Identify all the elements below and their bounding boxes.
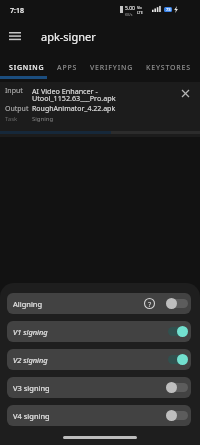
button[interactable]: APPS <box>51 52 84 80</box>
staticText: Signing <box>32 115 54 123</box>
button[interactable]: V2 signing <box>7 349 191 370</box>
staticText: 7:18 <box>10 6 24 16</box>
staticText: Task <box>5 115 18 123</box>
staticText: Utool_1152.63___Pro.apk <box>32 93 116 103</box>
staticText: AI Video Enhancer - <box>32 86 98 96</box>
button[interactable]: VERIFYING <box>84 52 140 80</box>
button[interactable]: Cancel task <box>176 84 194 102</box>
staticText: KB/s <box>125 12 133 17</box>
staticText: Output <box>5 104 29 114</box>
staticText: apk-signer <box>41 29 96 44</box>
button[interactable]: V3 signing <box>7 377 191 398</box>
staticText: RoughAnimator_4.22.apk <box>32 104 116 114</box>
staticText: APPS <box>57 63 78 73</box>
button[interactable]: SIGNING <box>3 52 51 80</box>
staticText: ? <box>148 299 152 309</box>
staticText: 5.00 <box>125 5 135 12</box>
button[interactable]: V4 signing <box>7 405 191 426</box>
staticText: V4 signing <box>13 411 50 421</box>
staticText: LTE <box>137 10 143 15</box>
staticText: V1 signing <box>13 327 48 337</box>
staticText: Vo <box>137 5 142 10</box>
button[interactable]: Help <box>142 296 157 311</box>
staticText: Aligning <box>13 299 43 309</box>
staticText: KEYSTORES <box>146 63 191 73</box>
staticText: VERIFYING <box>90 63 134 73</box>
staticText: V3 signing <box>13 383 50 393</box>
staticText: 73 <box>166 7 171 12</box>
staticText: SIGNING <box>9 63 45 73</box>
button[interactable]: Open navigation menu <box>4 22 26 50</box>
button[interactable]: Aligning <box>7 293 191 314</box>
button[interactable]: V1 signing <box>7 321 191 342</box>
staticText: V2 signing <box>13 355 48 365</box>
button[interactable]: KEYSTORES <box>140 52 197 80</box>
staticText: Input <box>5 86 23 96</box>
